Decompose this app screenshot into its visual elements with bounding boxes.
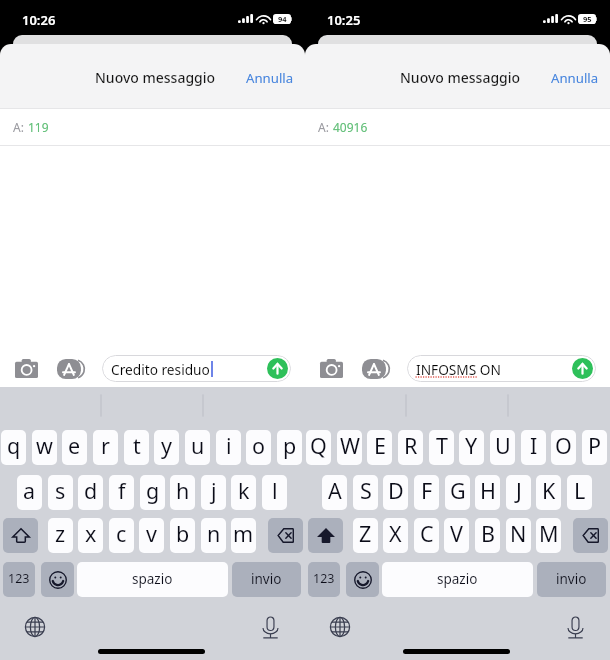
button[interactable]: K [536,475,561,510]
button[interactable]: Change keyboard [25,617,45,637]
button[interactable]: c [109,518,134,553]
staticText: E [374,431,386,460]
staticText: i [226,431,232,460]
button[interactable]: 123 [3,562,35,597]
staticText: Nuovo messaggio [95,68,216,87]
button[interactable]: m [231,518,256,553]
staticText: Z [359,519,372,548]
button[interactable]: Change keyboard [330,617,350,637]
button[interactable]: T [429,430,454,465]
button[interactable]: spazio [77,562,228,597]
button[interactable]: x [78,518,103,553]
button[interactable]: Y [459,430,484,465]
staticText: D [388,476,404,505]
button[interactable]: INFOSMS ON [407,355,596,382]
button[interactable]: a [17,475,42,510]
staticText: 95 [583,14,592,24]
button[interactable]: M [536,518,561,553]
button[interactable]: Backspace [573,518,608,553]
staticText: 123 [8,570,30,587]
button[interactable]: Send [572,358,593,379]
staticText: g [146,476,160,505]
button[interactable]: y [154,430,179,465]
button[interactable]: s [48,475,73,510]
button[interactable]: Camera [320,359,343,378]
staticText: u [191,431,205,460]
staticText: 10:26 [22,11,56,29]
button[interactable]: o [246,430,271,465]
button[interactable]: Dictate [263,617,278,638]
staticText: T [436,431,448,460]
staticText: v [146,519,157,548]
staticText: h [176,476,190,505]
staticText: Nuovo messaggio [400,68,521,87]
button[interactable]: Annulla [541,61,609,95]
button[interactable]: Annulla [236,61,304,95]
button[interactable]: U [490,430,515,465]
button[interactable]: Shift [3,518,38,553]
button[interactable]: D [383,475,408,510]
button[interactable]: w [32,430,57,465]
button[interactable]: i [216,430,241,465]
button[interactable]: G [445,475,470,510]
button[interactable]: l [262,475,287,510]
button[interactable]: P [582,430,607,465]
button[interactable]: u [185,430,210,465]
button[interactable]: N [506,518,531,553]
button[interactable]: Z [353,518,378,553]
button[interactable]: j [201,475,226,510]
button[interactable]: p [277,430,302,465]
button[interactable]: d [78,475,103,510]
staticText: Annulla [551,69,599,87]
button[interactable]: f [109,475,134,510]
button[interactable]: App Store [362,359,390,379]
button[interactable]: C [414,518,439,553]
button[interactable]: Shift [308,518,343,553]
button[interactable]: B [475,518,500,553]
button[interactable]: t [124,430,149,465]
staticText: S [360,476,372,505]
staticText: y [161,431,172,460]
button[interactable]: k [231,475,256,510]
staticText: G [450,476,466,505]
button[interactable]: Dictate [568,617,583,638]
staticText: U [495,431,511,460]
button[interactable]: L [567,475,592,510]
button[interactable]: W [337,430,362,465]
button[interactable]: Emoji [346,562,379,597]
button[interactable]: S [353,475,378,510]
button[interactable]: b [170,518,195,553]
button[interactable]: F [414,475,439,510]
button[interactable]: e [62,430,87,465]
button[interactable]: v [139,518,164,553]
button[interactable]: O [551,430,576,465]
button[interactable]: q [1,430,26,465]
button[interactable]: r [93,430,118,465]
button[interactable]: App Store [57,359,85,379]
button[interactable]: V [444,518,469,553]
button[interactable]: 123 [308,562,340,597]
button[interactable]: A [322,475,347,510]
button[interactable]: invio [537,562,606,597]
button[interactable]: J [506,475,531,510]
button[interactable]: I [521,430,546,465]
button[interactable]: Send [267,358,288,379]
button[interactable]: Emoji [41,562,74,597]
button[interactable]: E [367,430,392,465]
button[interactable]: R [398,430,423,465]
staticText: J [516,476,522,505]
button[interactable]: h [170,475,195,510]
button[interactable]: spazio [382,562,533,597]
button[interactable]: Credito residuo [102,355,291,382]
button[interactable]: invio [232,562,301,597]
button[interactable]: Backspace [268,518,303,553]
button[interactable]: Q [306,430,331,465]
button[interactable]: n [201,518,226,553]
button[interactable]: z [48,518,73,553]
button[interactable]: g [140,475,165,510]
staticText: x [85,519,97,548]
button[interactable]: Camera [15,359,38,378]
button[interactable]: X [383,518,408,553]
button[interactable]: H [475,475,500,510]
staticText: A: [318,119,333,135]
